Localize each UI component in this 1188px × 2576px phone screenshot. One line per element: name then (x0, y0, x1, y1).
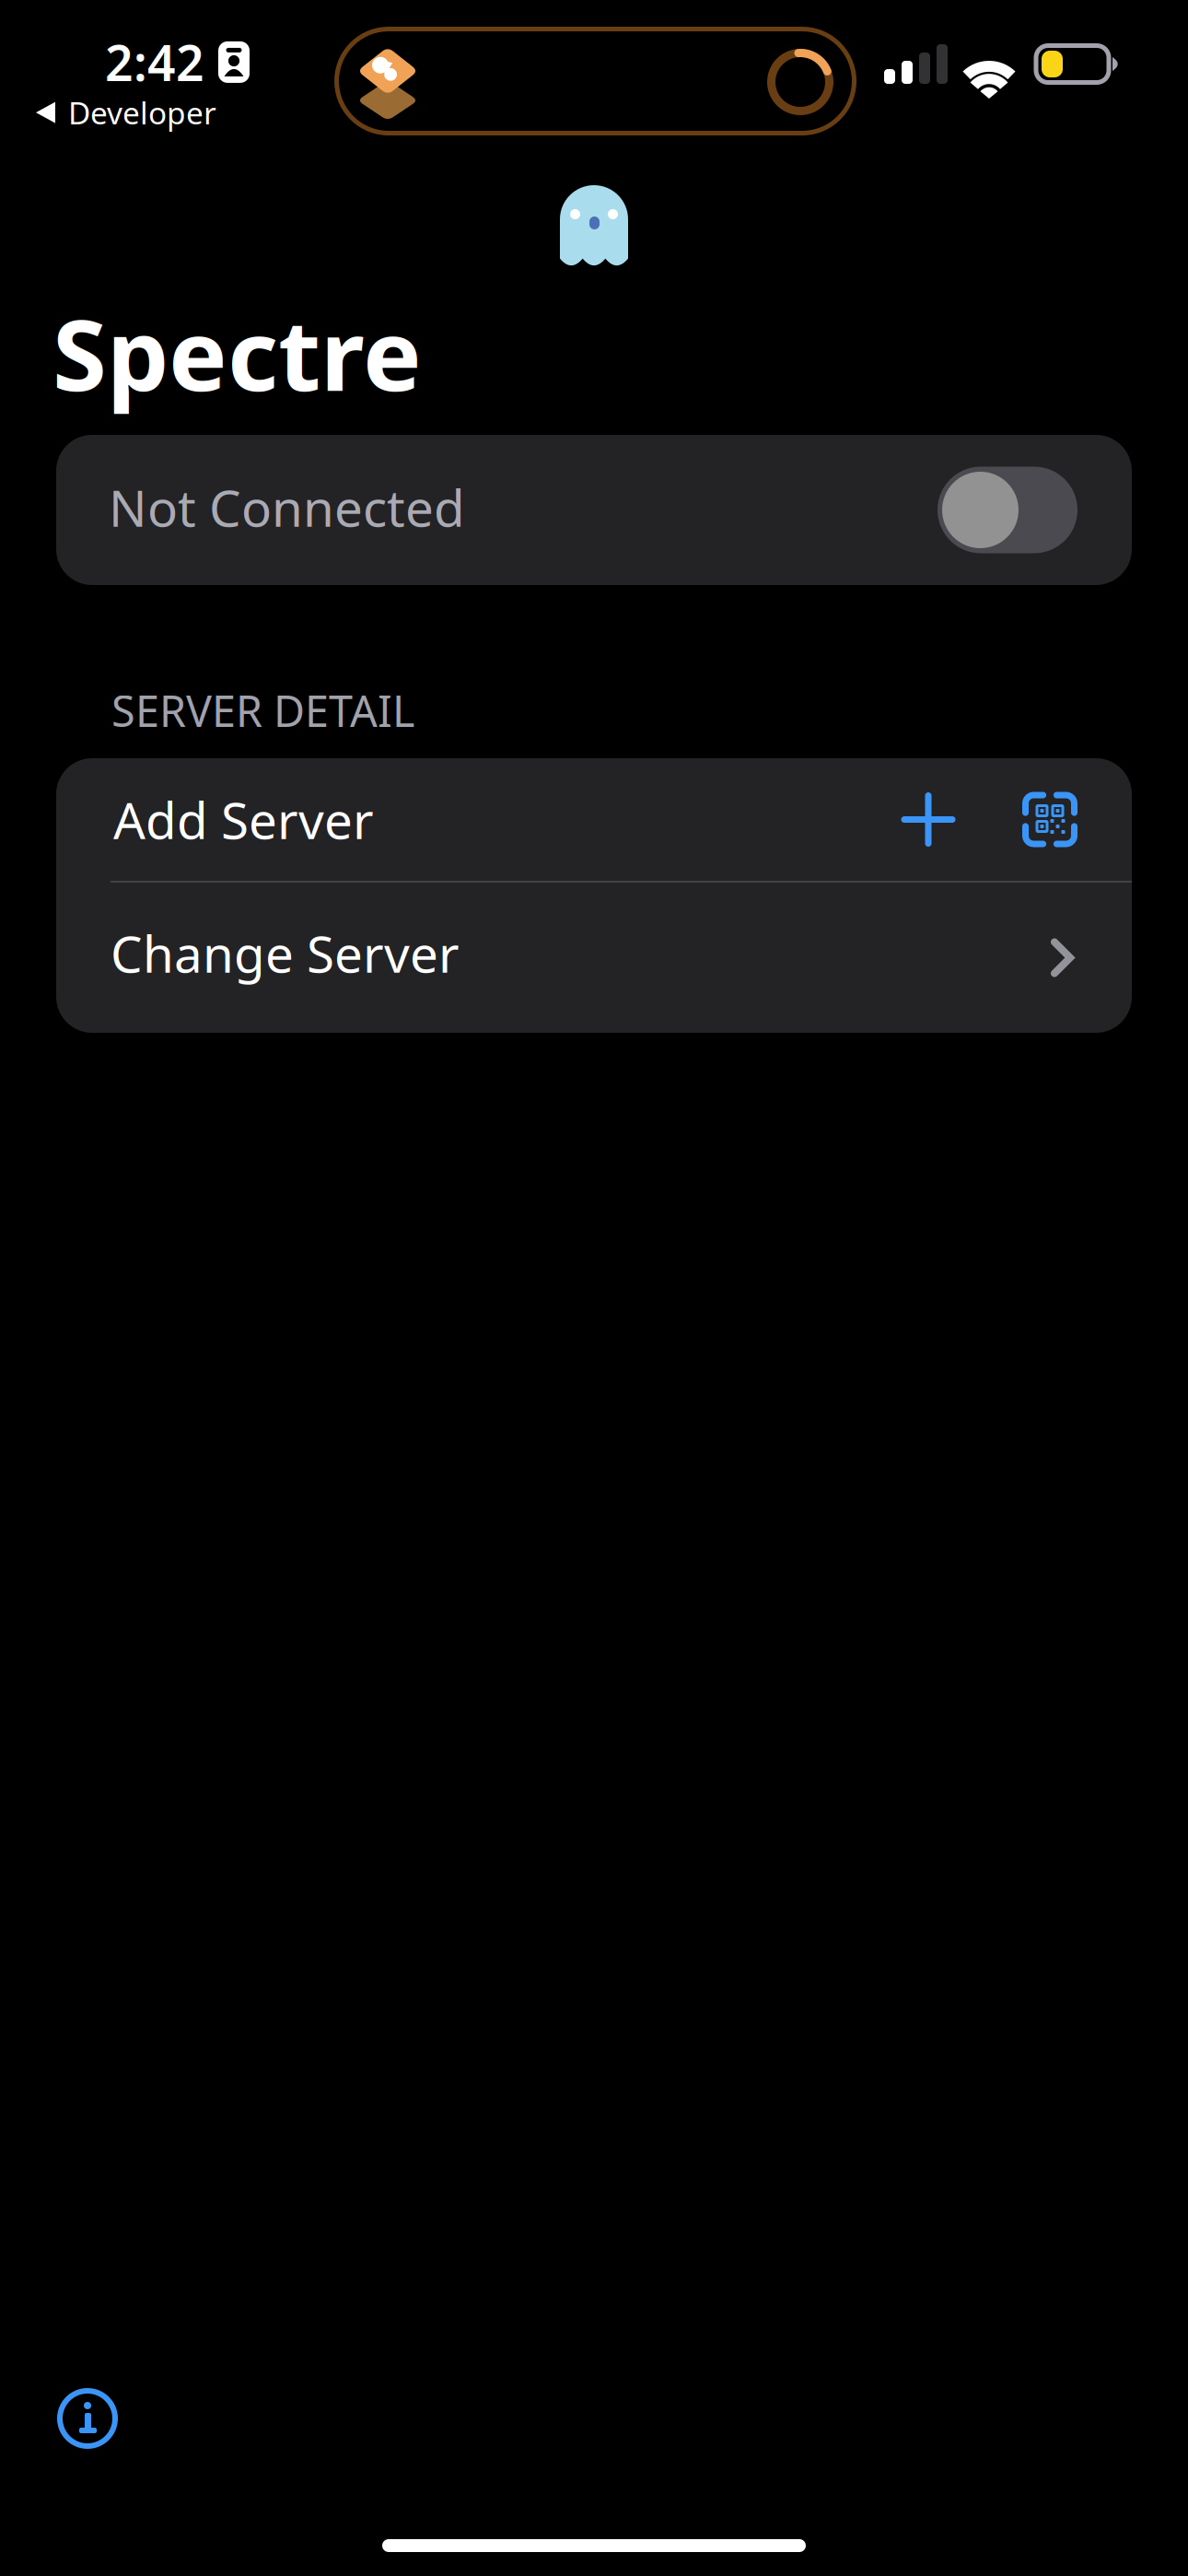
staticText: Change Server (111, 920, 460, 987)
staticText: SERVER DETAIL (111, 682, 414, 739)
staticText: Spectre (52, 287, 422, 418)
button[interactable]: Developer (36, 92, 216, 133)
button[interactable]: Add Server (56, 758, 1132, 881)
staticText: Not Connected (109, 474, 465, 541)
staticText: Add Server (113, 786, 374, 853)
staticText: Developer (68, 92, 216, 133)
staticText: 2:42 (105, 29, 204, 95)
button[interactable]: Change Server (56, 883, 1132, 1033)
button[interactable]: About Spectre (57, 2388, 118, 2449)
button[interactable]: Not Connected (56, 435, 1132, 585)
